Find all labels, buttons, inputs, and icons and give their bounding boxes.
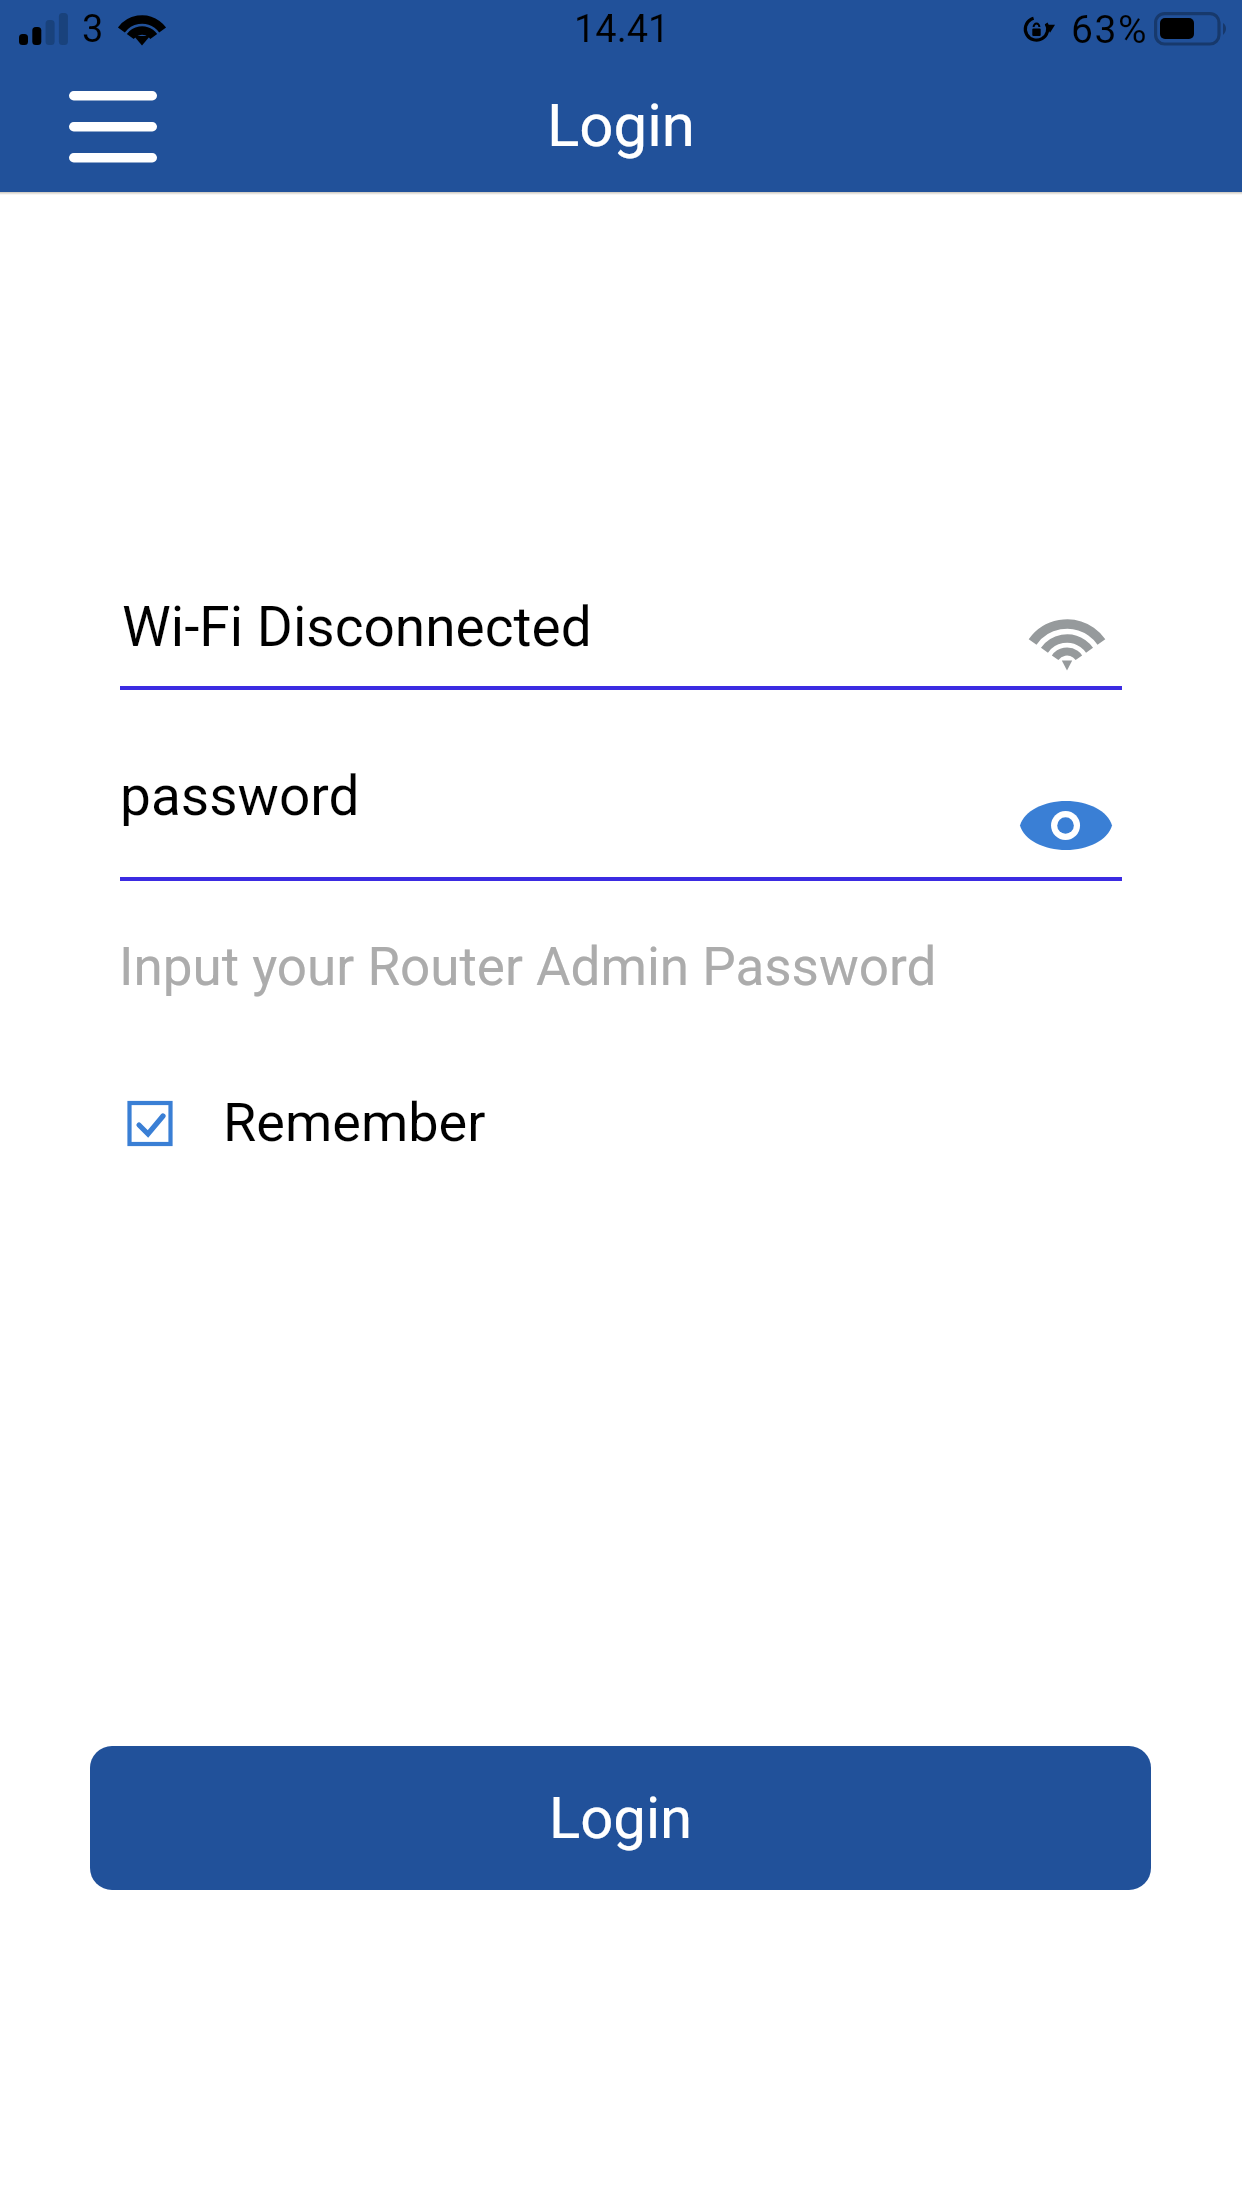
other: Wi-Fi connected [118, 10, 168, 48]
other: Cellular signal [19, 13, 71, 45]
staticText: 14.41 [574, 7, 670, 52]
button[interactable]: Open navigation menu [40, 76, 184, 180]
button[interactable]: Wi-Fi Disconnected [120, 560, 1122, 690]
staticText: Input your Router Admin Password [119, 936, 937, 998]
button[interactable]: Login [90, 1746, 1151, 1890]
staticText: 3 [82, 7, 104, 52]
button[interactable]: password [120, 753, 1122, 881]
staticText: Wi-Fi Disconnected [122, 595, 592, 659]
button[interactable]: Show password [1000, 776, 1122, 856]
button[interactable]: Remember [119, 1086, 486, 1158]
other: Battery 63 percent [1154, 12, 1232, 46]
staticText: Remember [223, 1091, 486, 1154]
staticText: Login [549, 1784, 693, 1852]
staticText: password [120, 764, 360, 828]
other: Wi-Fi signal [1025, 608, 1111, 674]
other: Rotation lock [1022, 12, 1060, 48]
staticText: Login [0, 90, 1242, 160]
staticText: 63% [1071, 7, 1149, 53]
